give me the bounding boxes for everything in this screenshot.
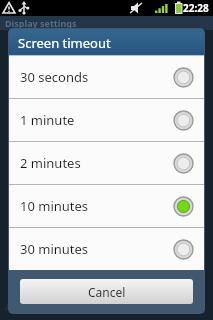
staticText: 2 minutes [20, 154, 174, 172]
staticText: 22:28 [183, 1, 209, 15]
button[interactable]: 10 minutes [9, 185, 204, 227]
button[interactable]: Cancel [20, 279, 193, 304]
staticText: Accelerometer [5, 301, 67, 313]
button[interactable]: 1 minute [9, 99, 204, 141]
staticText: 30 minutes [20, 240, 174, 258]
staticText: 30 seconds [20, 68, 174, 86]
button[interactable]: 30 seconds [9, 56, 204, 98]
staticText: Display settings [5, 17, 77, 29]
button[interactable]: 2 minutes [9, 142, 204, 184]
staticText: 1 minute [20, 111, 174, 129]
button[interactable]: 30 minutes [9, 228, 204, 270]
staticText: Cancel [88, 284, 126, 300]
staticText: 10 minutes [20, 197, 174, 215]
staticText: Screen timeout [18, 34, 111, 52]
